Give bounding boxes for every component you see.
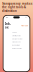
- staticText: Release notes: [12, 47, 22, 49]
- staticText: Filter Edit: [21, 25, 28, 27]
- staticText: Transparency makes: [2, 2, 32, 5]
- staticText: Design review: [12, 38, 22, 40]
- staticText: Weekly sync: [12, 41, 21, 43]
- staticText: 9:41: [5, 16, 8, 18]
- staticText: Budget plan: [12, 44, 20, 46]
- staticText: |||: [24, 16, 27, 18]
- staticText: Meeting notes: [12, 35, 21, 37]
- staticText: Inbox: [5, 22, 11, 29]
- staticText: distinction: [2, 9, 17, 13]
- staticText: the right tools &: [2, 5, 26, 9]
- staticText: Today: [12, 32, 17, 33]
